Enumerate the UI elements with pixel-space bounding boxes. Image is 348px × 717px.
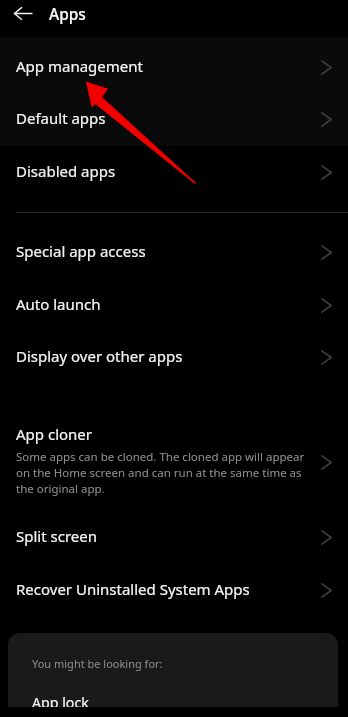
button[interactable]: App cloner — [0, 382, 348, 509]
button[interactable]: Recover Uninstalled System Apps — [0, 562, 348, 615]
button[interactable]: Auto launch — [0, 277, 348, 330]
staticText: App lock — [32, 693, 89, 707]
button[interactable]: Split screen — [0, 509, 348, 562]
button[interactable]: You might be looking for: — [8, 633, 338, 707]
button[interactable]: Display over other apps — [0, 329, 348, 382]
staticText: Special app access — [16, 241, 146, 261]
button[interactable]: Back — [5, 0, 41, 31]
staticText: Disabled apps — [16, 161, 116, 181]
staticText: App management — [16, 56, 143, 76]
staticText: Default apps — [16, 108, 106, 128]
staticText: App cloner — [16, 424, 93, 444]
button[interactable]: Special app access — [0, 224, 348, 277]
staticText: Split screen — [16, 526, 97, 546]
button[interactable]: App management — [0, 39, 348, 92]
button[interactable]: Default apps — [0, 91, 348, 144]
staticText: Auto launch — [16, 294, 101, 314]
button[interactable]: Disabled apps — [0, 144, 348, 197]
staticText: Apps — [49, 3, 86, 24]
staticText: Display over other apps — [16, 346, 183, 366]
staticText: You might be looking for: — [32, 656, 163, 671]
staticText: Recover Uninstalled System Apps — [16, 579, 250, 599]
staticText: Some apps can be cloned. The cloned app … — [16, 449, 308, 497]
